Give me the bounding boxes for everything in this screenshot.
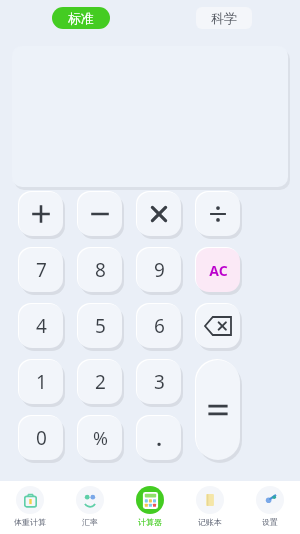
button[interactable]: Divide: [196, 192, 240, 236]
button[interactable]: 汇率: [64, 486, 116, 527]
staticText: 9: [154, 257, 165, 283]
button[interactable]: 科学: [196, 7, 252, 29]
button[interactable]: 7: [19, 248, 63, 292]
staticText: 1: [36, 369, 47, 395]
staticText: 2: [95, 369, 106, 395]
button[interactable]: 记账本: [184, 486, 236, 527]
button[interactable]: 8: [78, 248, 122, 292]
staticText: 体重计算: [14, 517, 46, 527]
staticText: 设置: [262, 517, 278, 527]
button[interactable]: Plus: [19, 192, 63, 236]
staticText: 计算器: [138, 517, 162, 527]
staticText: .: [156, 425, 162, 452]
button[interactable]: 3: [137, 360, 181, 404]
staticText: 科学: [211, 10, 237, 26]
staticText: 6: [154, 313, 165, 339]
staticText: AC: [209, 261, 228, 280]
button[interactable]: 设置: [244, 486, 296, 527]
button[interactable]: 标准: [52, 7, 110, 29]
button[interactable]: 体重计算: [4, 486, 56, 527]
button[interactable]: AC: [196, 248, 240, 292]
staticText: 记账本: [198, 517, 222, 527]
button[interactable]: Minus: [78, 192, 122, 236]
staticText: %: [93, 426, 108, 451]
button[interactable]: Equals: [196, 360, 240, 460]
staticText: 7: [36, 257, 47, 283]
button[interactable]: 4: [19, 304, 63, 348]
button[interactable]: Multiply: [137, 192, 181, 236]
button[interactable]: 5: [78, 304, 122, 348]
button[interactable]: 6: [137, 304, 181, 348]
button[interactable]: 计算器: [124, 486, 176, 527]
button[interactable]: %: [78, 416, 122, 460]
staticText: 5: [95, 313, 106, 339]
staticText: 4: [36, 313, 47, 339]
staticText: 标准: [68, 10, 94, 26]
button[interactable]: 1: [19, 360, 63, 404]
button[interactable]: 0: [19, 416, 63, 460]
button[interactable]: Decimal point: [137, 416, 181, 460]
button[interactable]: 2: [78, 360, 122, 404]
staticText: 3: [154, 369, 165, 395]
staticText: 0: [36, 425, 47, 451]
staticText: 汇率: [82, 517, 98, 527]
button[interactable]: 9: [137, 248, 181, 292]
button[interactable]: Backspace: [196, 304, 240, 348]
staticText: 8: [95, 257, 106, 283]
